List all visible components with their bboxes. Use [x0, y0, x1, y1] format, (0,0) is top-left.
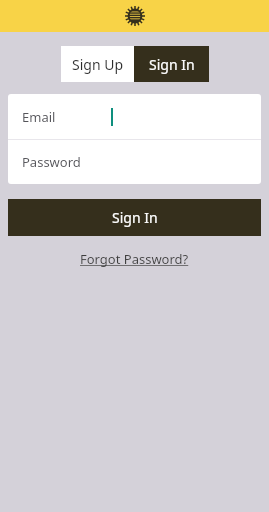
staticText: Sign In [149, 55, 195, 74]
button[interactable]: Sign Up [61, 46, 134, 82]
button[interactable]: Sign In [8, 199, 261, 236]
button[interactable]: Password [8, 140, 261, 184]
staticText: Sign Up [72, 55, 124, 74]
button[interactable]: Forgot Password? [74, 248, 195, 270]
other: App logo [125, 6, 145, 26]
staticText: Email [22, 108, 56, 126]
button[interactable]: Email [8, 94, 261, 139]
staticText: Forgot Password? [80, 250, 189, 268]
staticText: Password [22, 153, 81, 171]
button[interactable]: Sign In [134, 46, 209, 82]
staticText: Sign In [112, 208, 158, 227]
